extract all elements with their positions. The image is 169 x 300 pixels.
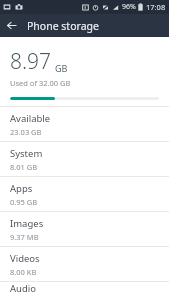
staticText: Images [10,217,44,230]
staticText: Used of 32.00 GB [10,78,71,88]
staticText: Audio [10,282,36,295]
staticText: Available [10,112,51,125]
staticText: GB [55,62,68,74]
button[interactable]: Available [0,107,169,141]
staticText: 23.03 GB [10,127,42,137]
button[interactable]: Back [0,14,23,37]
button[interactable]: Audio [0,282,169,300]
staticText: System [10,147,43,160]
staticText: 96% [122,2,136,12]
button[interactable]: Apps [0,177,169,211]
staticText: 8.01 GB [10,162,38,172]
staticText: 9.37 MB [10,232,39,242]
staticText: Phone storage [27,19,99,33]
button[interactable]: System [0,142,169,176]
staticText: Videos [10,252,40,265]
staticText: 17:08 [146,2,166,12]
staticText: 0.95 GB [10,197,38,207]
staticText: Apps [10,182,33,195]
staticText: 8.97 [10,47,52,76]
button[interactable]: Images [0,212,169,246]
staticText: 8.00 KB [10,267,37,277]
button[interactable]: Videos [0,247,169,281]
